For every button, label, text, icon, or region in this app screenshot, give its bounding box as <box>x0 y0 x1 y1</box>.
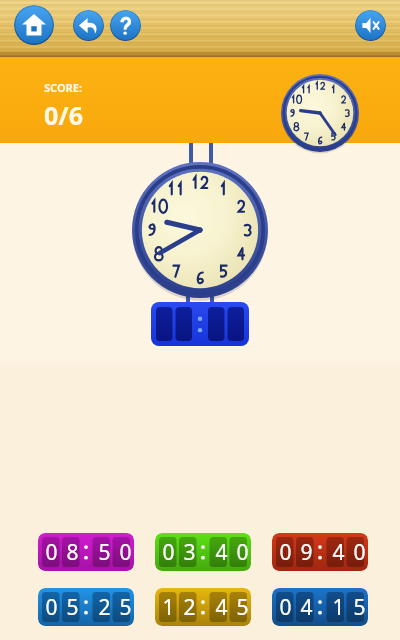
staticText: 2 <box>183 593 196 622</box>
staticText: 5 <box>66 593 79 622</box>
staticText: 0/6 <box>44 98 83 132</box>
button[interactable]: Home <box>14 5 54 45</box>
button[interactable]: Back <box>73 10 104 41</box>
staticText: 0 <box>162 538 175 567</box>
staticText: 0 <box>45 593 58 622</box>
staticText: 2 <box>98 593 111 622</box>
staticText: 0 <box>45 538 58 567</box>
button[interactable]: 0 <box>155 533 251 571</box>
button[interactable]: Help <box>110 10 141 41</box>
staticText: 3 <box>183 538 196 567</box>
staticText: 0 <box>236 538 249 567</box>
staticText: 0 <box>353 538 366 567</box>
staticText: 5 <box>98 538 111 567</box>
staticText: 1 <box>332 593 345 622</box>
button[interactable]: 0 <box>272 533 368 571</box>
staticText: 4 <box>215 538 228 567</box>
button[interactable]: Mute <box>355 10 386 41</box>
staticText: SCORE: <box>44 80 83 95</box>
staticText: 5 <box>119 593 132 622</box>
staticText: 4 <box>215 593 228 622</box>
staticText: 1 <box>162 593 175 622</box>
staticText: 5 <box>353 593 366 622</box>
staticText: 5 <box>236 593 249 622</box>
staticText: 0 <box>119 538 132 567</box>
staticText: 0 <box>279 593 292 622</box>
staticText: 8 <box>66 538 79 567</box>
button[interactable]: 0 <box>272 588 368 626</box>
staticText: 4 <box>332 538 345 567</box>
staticText: 9 <box>300 538 313 567</box>
staticText: 0 <box>279 538 292 567</box>
button[interactable]: 0 <box>38 588 134 626</box>
button[interactable]: 0 <box>38 533 134 571</box>
button[interactable]: 1 <box>155 588 251 626</box>
staticText: 4 <box>300 593 313 622</box>
